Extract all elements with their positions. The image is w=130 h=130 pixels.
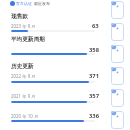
staticText: 371: [89, 72, 99, 80]
staticText: 357: [89, 92, 99, 100]
staticText: 历史更新: [11, 63, 34, 70]
staticText: 2022 年 9 月: [11, 73, 36, 79]
staticText: 2023 年 9 月: [11, 23, 36, 29]
staticText: 2021 年 9 月: [11, 93, 36, 99]
button[interactable]: 官方认证: [10, 1, 50, 6]
staticText: 63: [92, 22, 99, 30]
staticText: 现售款: [11, 13, 28, 20]
staticText: 2020 年 10 月: [11, 113, 39, 119]
staticText: 平均更新周期: [11, 36, 45, 43]
staticText: 336: [89, 112, 99, 120]
staticText: 358: [89, 46, 99, 54]
staticText: 官方认证: [16, 1, 32, 6]
staticText: 最近发布: [34, 1, 50, 6]
